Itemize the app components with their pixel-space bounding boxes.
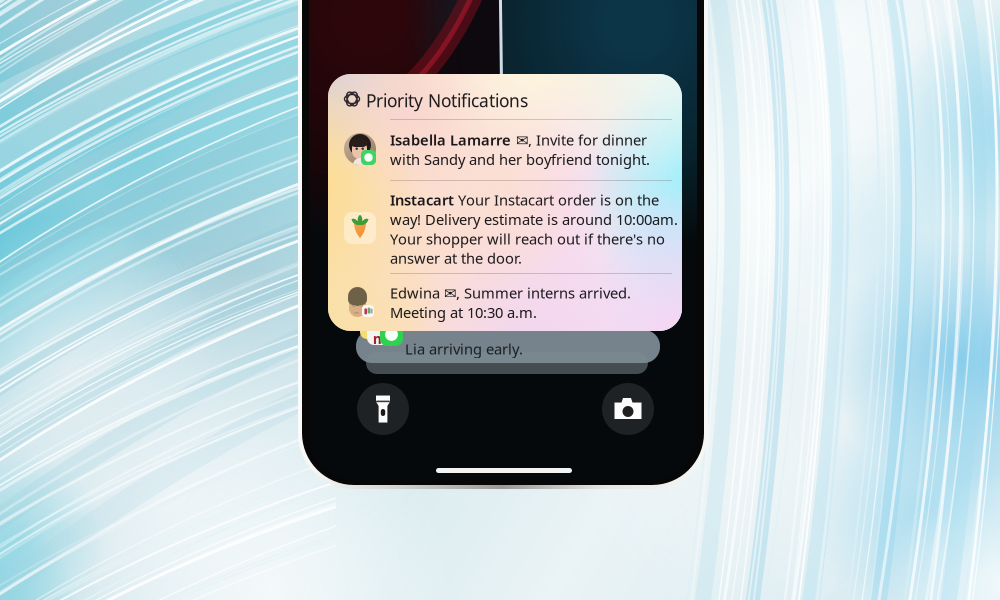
- staticText: n: [373, 330, 382, 348]
- staticText: Isabella Lamarre ✉, Invite for dinner wi…: [390, 130, 650, 169]
- button[interactable]: Camera: [602, 383, 654, 435]
- button[interactable]: Flashlight: [357, 383, 409, 435]
- staticText: Priority Notifications: [366, 89, 528, 112]
- staticText: Instacart Your Instacart order is on the…: [390, 190, 678, 268]
- staticText: Edwina ✉, Summer interns arrived. Meetin…: [390, 283, 631, 322]
- staticText: Lia arriving early.: [405, 339, 523, 358]
